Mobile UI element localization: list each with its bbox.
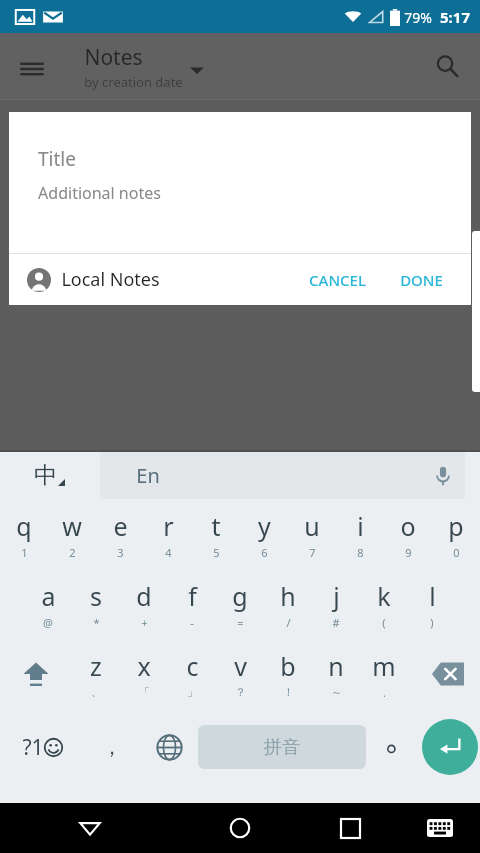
staticText: ～: [331, 685, 342, 699]
staticText: by creation date: [84, 73, 183, 91]
button[interactable]: Enter: [422, 719, 478, 775]
staticText: q: [16, 509, 32, 543]
button[interactable]: y: [240, 499, 288, 569]
button[interactable]: l: [408, 569, 456, 639]
staticText: t: [211, 509, 221, 543]
staticText: ?1: [22, 733, 44, 762]
button[interactable]: En: [136, 452, 160, 499]
staticText: 5:17: [440, 7, 470, 27]
button[interactable]: Hide keyboard: [0, 803, 180, 853]
staticText: CANCEL: [309, 270, 366, 290]
staticText: 7: [309, 545, 316, 560]
staticText: ，: [102, 735, 122, 760]
button[interactable]: 中: [34, 452, 65, 499]
button[interactable]: d: [120, 569, 168, 639]
staticText: e: [113, 509, 128, 543]
button[interactable]: CANCEL: [297, 262, 378, 298]
staticText: Additional notes: [38, 182, 161, 204]
button[interactable]: Shift: [0, 639, 72, 709]
staticText: 、: [91, 685, 102, 699]
staticText: *: [93, 615, 100, 630]
button[interactable]: Recent apps: [300, 803, 400, 853]
staticText: DONE: [400, 270, 443, 290]
staticText: /: [286, 615, 291, 630]
button[interactable]: u: [288, 499, 336, 569]
button[interactable]: Title: [9, 146, 471, 176]
staticText: 2: [69, 545, 76, 560]
button[interactable]: Voice input: [424, 457, 462, 495]
button[interactable]: [100, 452, 465, 499]
staticText: a: [41, 579, 56, 613]
button[interactable]: q: [0, 499, 48, 569]
button[interactable]: r: [144, 499, 192, 569]
staticText: 1: [21, 545, 28, 560]
button[interactable]: Backspace: [408, 639, 480, 709]
button[interactable]: f: [168, 569, 216, 639]
button[interactable]: b: [264, 639, 312, 709]
staticText: o: [400, 509, 416, 543]
staticText: w: [62, 509, 82, 543]
staticText: ！: [283, 685, 294, 699]
staticText: i: [357, 509, 364, 543]
button[interactable]: t: [192, 499, 240, 569]
staticText: 3: [117, 545, 124, 560]
button[interactable]: ，: [84, 709, 140, 785]
button[interactable]: DONE: [388, 262, 455, 298]
button[interactable]: w: [48, 499, 96, 569]
staticText: m: [372, 649, 396, 683]
button[interactable]: m: [360, 639, 408, 709]
staticText: @: [43, 615, 53, 630]
button[interactable]: ?1: [0, 709, 84, 785]
staticText: En: [136, 462, 160, 489]
staticText: f: [188, 579, 197, 613]
button[interactable]: 拼音: [198, 725, 366, 769]
button[interactable]: i: [336, 499, 384, 569]
staticText: r: [163, 509, 174, 543]
staticText: 6: [261, 545, 268, 560]
button[interactable]: h: [264, 569, 312, 639]
button[interactable]: p: [432, 499, 480, 569]
button[interactable]: v: [216, 639, 264, 709]
staticText: y: [258, 509, 271, 543]
button[interactable]: Search: [424, 43, 470, 89]
button[interactable]: s: [72, 569, 120, 639]
button[interactable]: Local Notes: [27, 267, 160, 292]
button[interactable]: c: [168, 639, 216, 709]
staticText: z: [90, 649, 102, 683]
button[interactable]: o: [384, 499, 432, 569]
button[interactable]: e: [96, 499, 144, 569]
staticText: g: [232, 579, 248, 613]
staticText: 5: [213, 545, 220, 560]
staticText: =: [237, 615, 244, 630]
button[interactable]: Home: [180, 803, 300, 853]
button[interactable]: Change keyboard: [400, 803, 480, 853]
button[interactable]: k: [360, 569, 408, 639]
staticText: p: [448, 509, 464, 543]
staticText: ？: [235, 685, 246, 699]
button[interactable]: Additional notes: [9, 182, 471, 210]
staticText: +: [141, 615, 148, 630]
button[interactable]: n: [312, 639, 360, 709]
staticText: Title: [38, 146, 76, 172]
staticText: (: [382, 615, 386, 630]
staticText: ): [430, 615, 434, 630]
button[interactable]: j: [312, 569, 360, 639]
button[interactable]: a: [24, 569, 72, 639]
button[interactable]: z: [72, 639, 120, 709]
staticText: b: [280, 649, 296, 683]
button[interactable]: Sort order: [178, 51, 216, 89]
staticText: -: [190, 615, 194, 630]
staticText: 」: [187, 685, 198, 699]
staticText: c: [186, 649, 199, 683]
staticText: #: [332, 615, 340, 630]
button[interactable]: Open navigation drawer: [10, 47, 54, 91]
staticText: Notes: [84, 43, 143, 72]
button[interactable]: g: [216, 569, 264, 639]
staticText: n: [328, 649, 344, 683]
staticText: k: [377, 579, 391, 613]
button[interactable]: x: [120, 639, 168, 709]
button[interactable]: [366, 709, 420, 785]
staticText: x: [137, 649, 151, 683]
staticText: Local Notes: [61, 267, 160, 292]
button[interactable]: Switch language: [140, 709, 198, 785]
